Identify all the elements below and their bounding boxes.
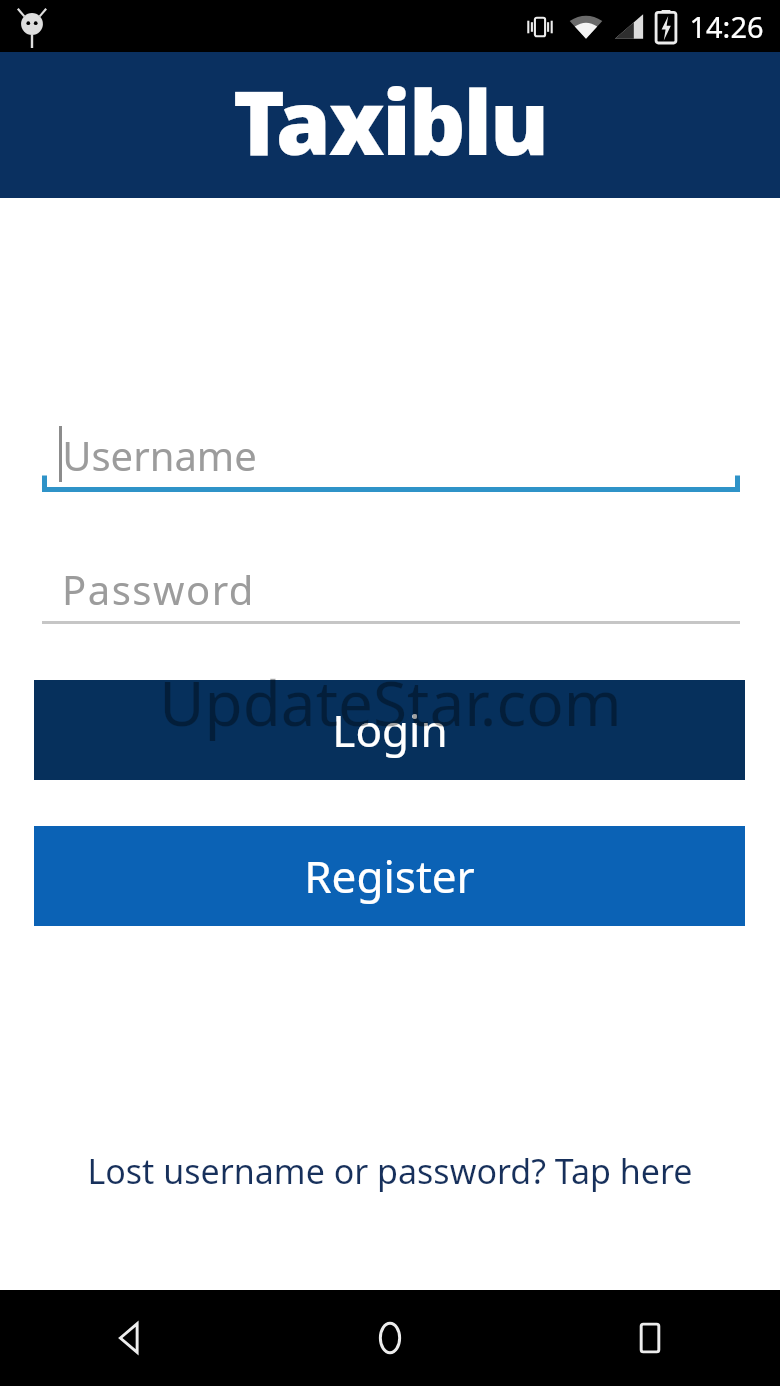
staticText: 14:26: [689, 7, 764, 46]
button[interactable]: Lost username or password? Tap here: [0, 1135, 780, 1207]
staticText: Username: [62, 428, 257, 482]
staticText: Password: [62, 562, 255, 616]
button[interactable]: Username: [42, 420, 740, 492]
button[interactable]: Home: [260, 1290, 520, 1386]
button[interactable]: Recent apps: [520, 1290, 780, 1386]
button[interactable]: Back: [0, 1290, 260, 1386]
staticText: Taxiblu: [233, 61, 547, 181]
button[interactable]: Password: [42, 558, 740, 624]
staticText: UpdateStar.com: [159, 660, 622, 744]
staticText: Login: [332, 700, 448, 760]
button[interactable]: Login: [34, 680, 745, 780]
button[interactable]: Register: [34, 826, 745, 926]
staticText: Lost username or password? Tap here: [87, 1148, 693, 1194]
staticText: Register: [304, 846, 475, 906]
